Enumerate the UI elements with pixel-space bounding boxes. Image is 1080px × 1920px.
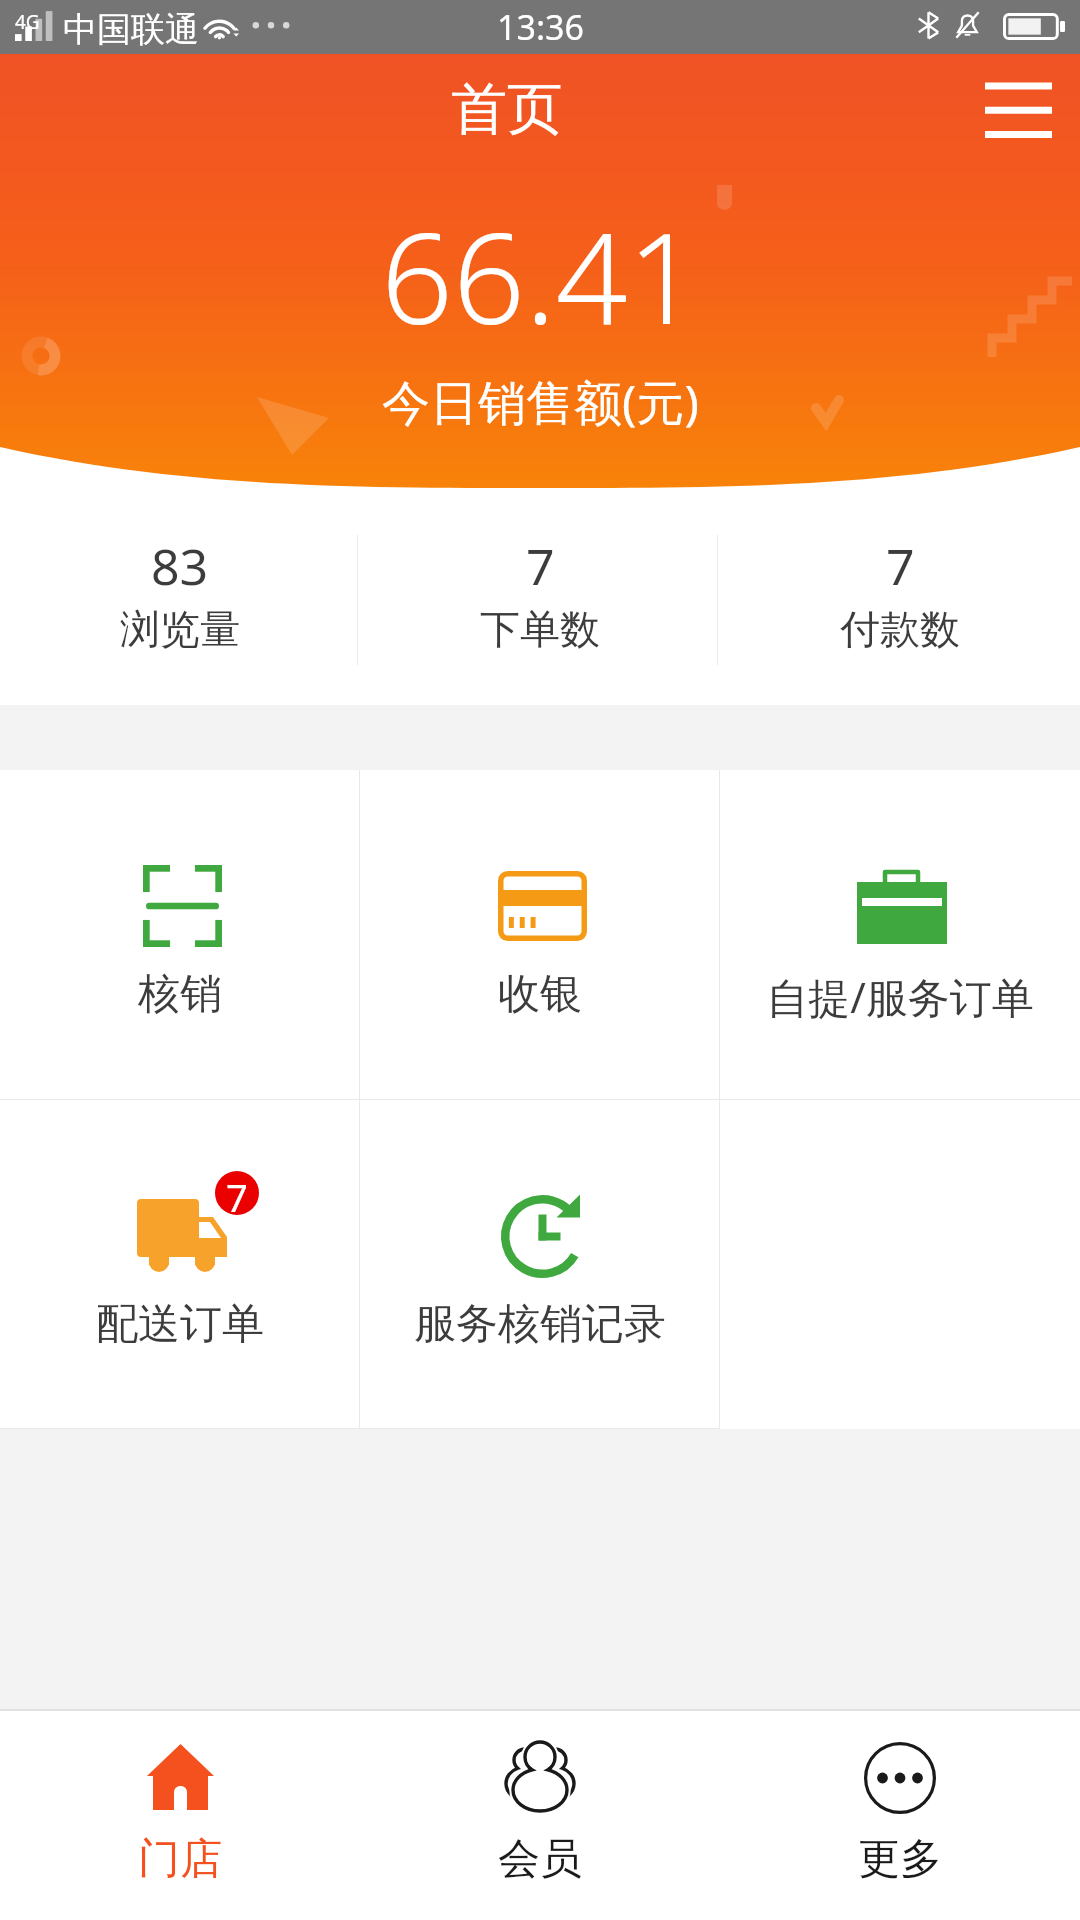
staticText: 66.41: [381, 189, 700, 361]
button[interactable]: 会员: [360, 1711, 720, 1920]
staticText: 中国联通: [63, 8, 199, 51]
button[interactable]: 服务核销记录: [360, 1100, 720, 1429]
staticText: 7: [886, 532, 915, 600]
staticText: 收银: [498, 968, 582, 1021]
button[interactable]: 自提/服务订单: [720, 770, 1080, 1099]
staticText: 付款数: [840, 604, 960, 654]
button[interactable]: 更多: [720, 1711, 1080, 1920]
staticText: 下单数: [480, 604, 600, 654]
button[interactable]: 7: [360, 488, 720, 705]
button[interactable]: 收银: [360, 770, 720, 1099]
staticText: 7: [226, 1171, 248, 1215]
staticText: 7: [526, 532, 555, 600]
button[interactable]: 7: [720, 488, 1080, 705]
button[interactable]: 7: [0, 1100, 360, 1429]
staticText: 首页: [451, 74, 563, 145]
staticText: 服务核销记录: [414, 1298, 666, 1351]
staticText: 核销: [138, 968, 222, 1021]
staticText: 13:36: [497, 4, 584, 50]
staticText: 4G: [15, 9, 40, 35]
button[interactable]: 门店: [0, 1711, 360, 1920]
staticText: 门店: [138, 1833, 222, 1886]
staticText: 自提/服务订单: [766, 968, 1034, 1025]
staticText: 更多: [858, 1833, 942, 1886]
staticText: 浏览量: [120, 604, 240, 654]
button[interactable]: Menu: [970, 66, 1066, 154]
button[interactable]: 83: [0, 488, 360, 705]
button[interactable]: 核销: [0, 770, 360, 1099]
staticText: 配送订单: [96, 1298, 264, 1351]
staticText: 今日销售额(元): [382, 369, 699, 435]
staticText: 83: [151, 532, 209, 600]
staticText: 会员: [498, 1833, 582, 1886]
